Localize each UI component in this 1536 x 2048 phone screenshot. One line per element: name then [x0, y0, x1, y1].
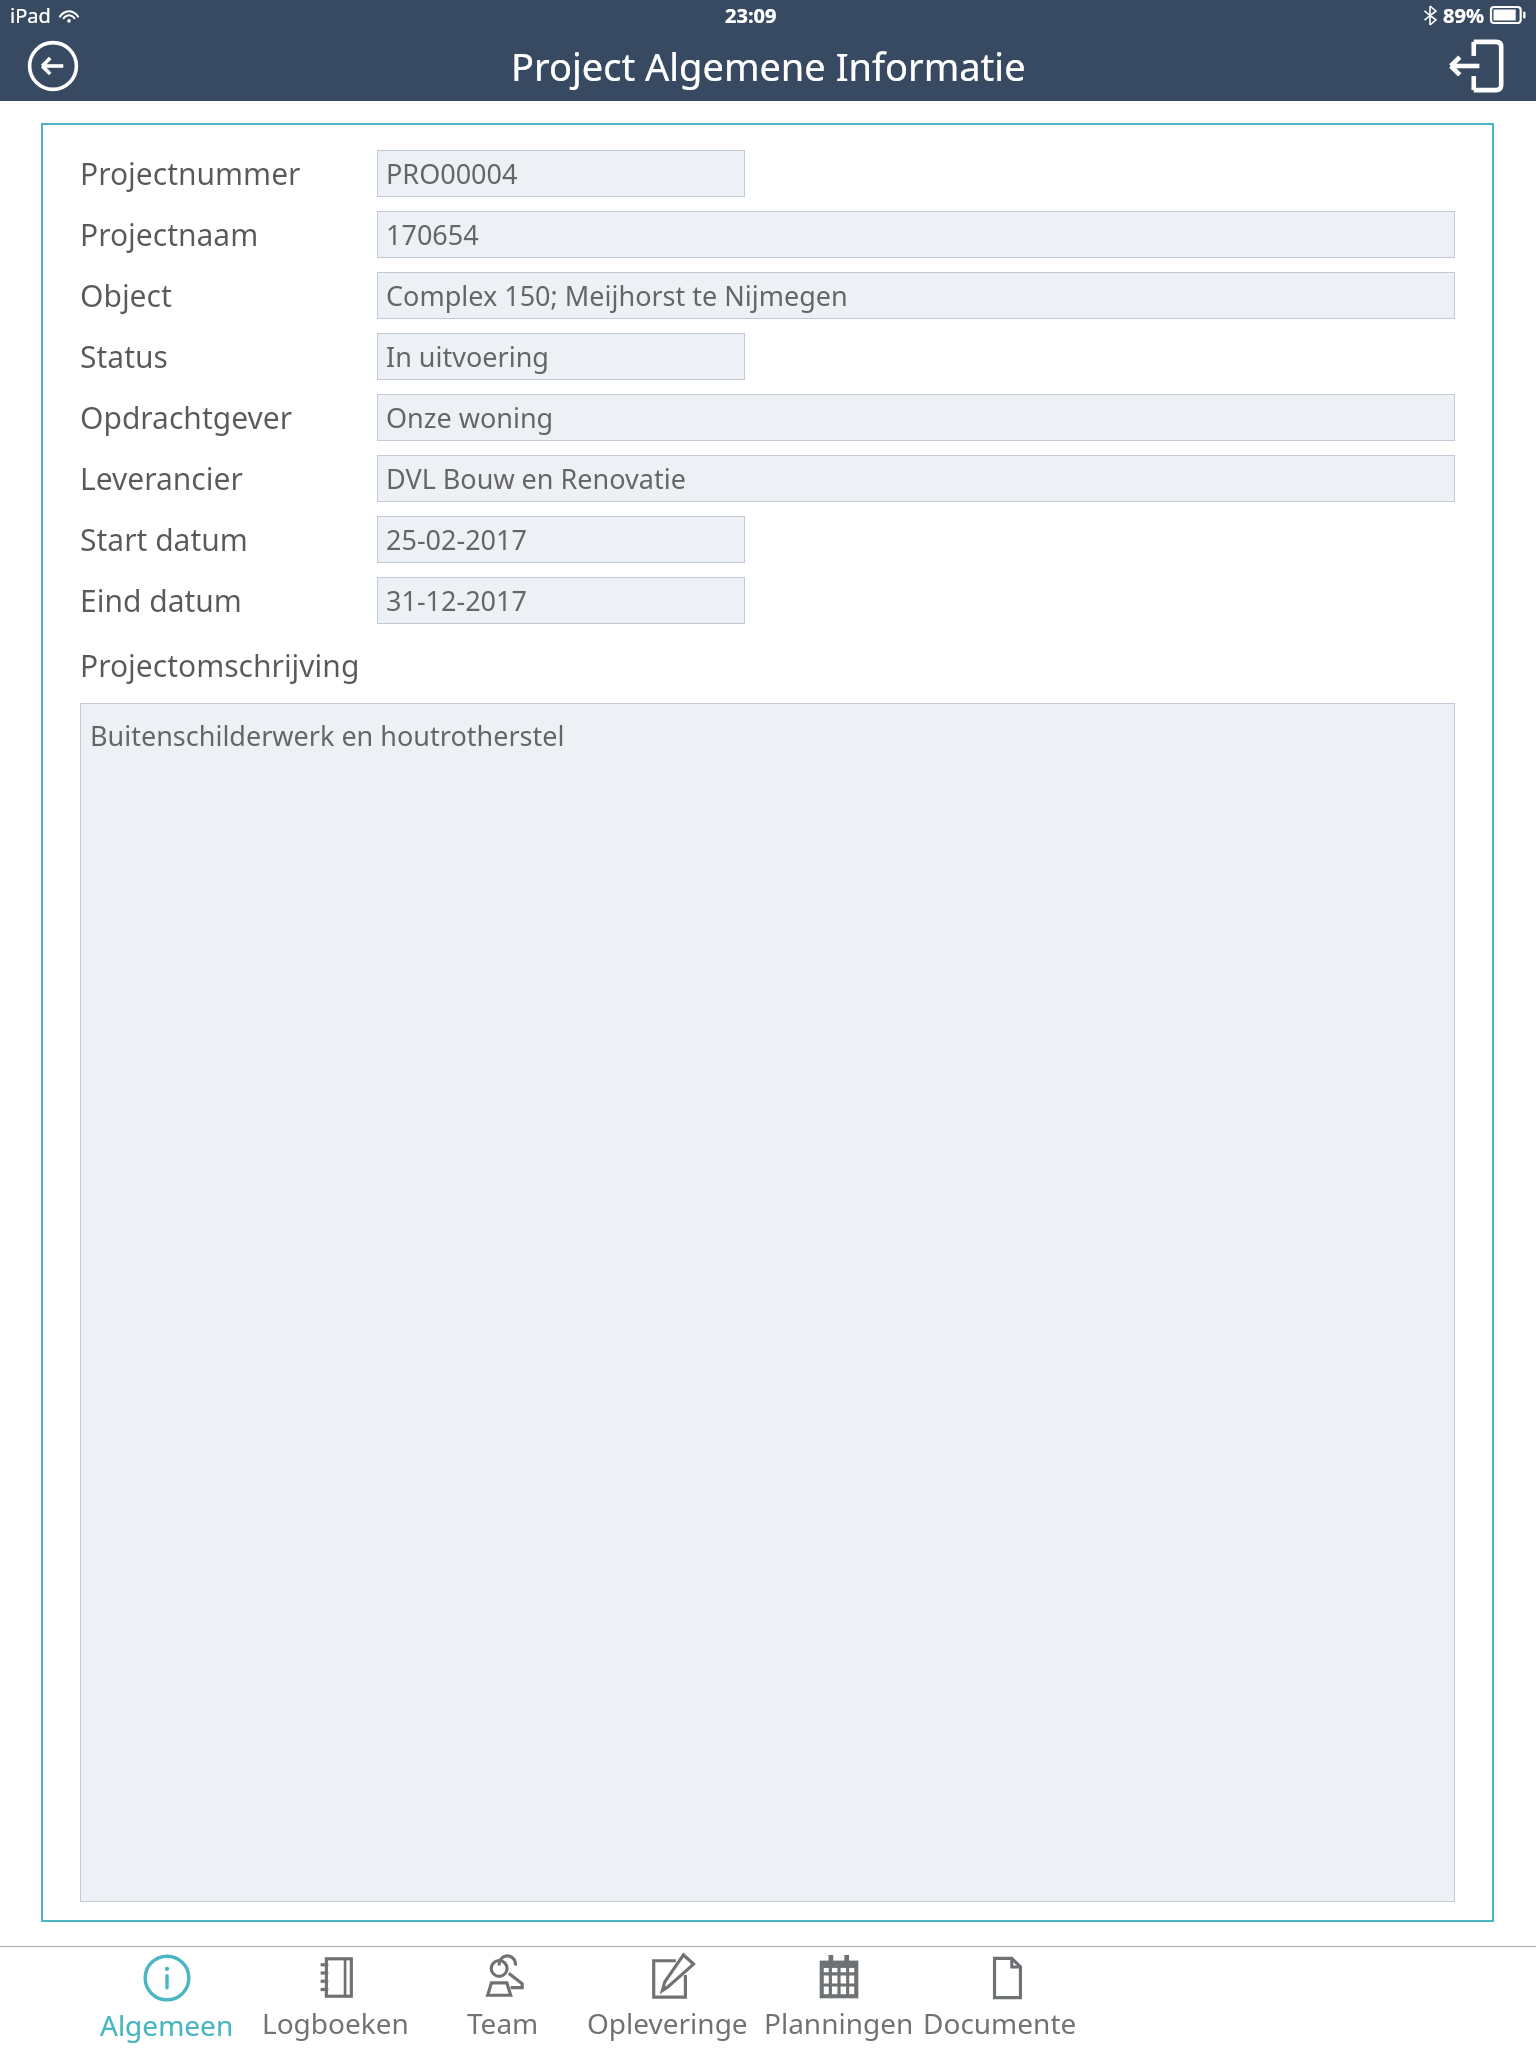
button[interactable]: DVL Bouw en Renovatie — [377, 455, 1455, 502]
button[interactable]: Team — [419, 1954, 587, 2042]
button[interactable]: Algemeen — [83, 1952, 251, 2044]
staticText: 31-12-2017 — [386, 582, 527, 619]
staticText: Project Algemene Informatie — [511, 40, 1026, 92]
staticText: Projectnummer — [80, 153, 301, 194]
button[interactable]: 170654 — [377, 211, 1455, 258]
button[interactable]: 25-02-2017 — [377, 516, 745, 563]
button[interactable]: Logboeken — [251, 1954, 419, 2042]
staticText: 170654 — [386, 216, 479, 253]
staticText: In uitvoering — [386, 338, 549, 375]
staticText: Object — [80, 275, 172, 316]
button[interactable]: PRO00004 — [377, 150, 745, 197]
staticText: DVL Bouw en Renovatie — [386, 460, 686, 497]
staticText: Eind datum — [80, 580, 242, 621]
staticText: 23:09 — [725, 2, 777, 29]
staticText: Logboeken — [262, 2004, 409, 2042]
button[interactable]: In uitvoering — [377, 333, 745, 380]
button[interactable]: Onze woning — [377, 394, 1455, 441]
staticText: PRO00004 — [386, 155, 518, 192]
button[interactable]: 31-12-2017 — [377, 577, 745, 624]
button[interactable]: Opleveringen — [587, 1954, 755, 2042]
staticText: Start datum — [80, 519, 248, 560]
staticText: Onze woning — [386, 399, 554, 436]
button[interactable]: Back — [16, 30, 90, 101]
staticText: Opdrachtgever — [80, 397, 293, 438]
button[interactable]: Logout — [1438, 30, 1514, 101]
staticText: Algemeen — [100, 2006, 234, 2044]
staticText: Projectomschrijving — [80, 645, 360, 686]
staticText: Planningen — [764, 2004, 914, 2042]
staticText: Documenten — [923, 2004, 1091, 2042]
staticText: iPad — [10, 2, 51, 29]
staticText: Opleveringen — [587, 2004, 755, 2042]
button[interactable]: Planningen — [755, 1954, 923, 2042]
staticText: Buitenschilderwerk en houtrotherstel — [90, 717, 565, 754]
staticText: Complex 150; Meijhorst te Nijmegen — [386, 277, 848, 314]
staticText: Projectnaam — [80, 214, 259, 255]
staticText: Leverancier — [80, 458, 243, 499]
staticText: 25-02-2017 — [386, 521, 527, 558]
button[interactable]: Complex 150; Meijhorst te Nijmegen — [377, 272, 1455, 319]
staticText: Team — [467, 2004, 539, 2042]
staticText: 89% — [1443, 2, 1484, 29]
button[interactable]: Documenten — [923, 1954, 1091, 2042]
button[interactable]: Buitenschilderwerk en houtrotherstel — [80, 703, 1455, 1902]
staticText: Status — [80, 336, 168, 377]
